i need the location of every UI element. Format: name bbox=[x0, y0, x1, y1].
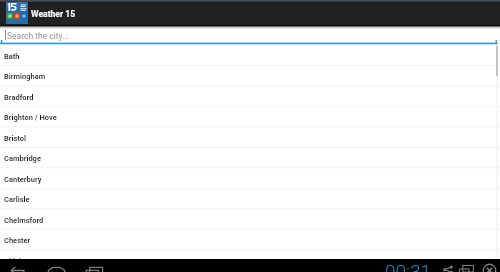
staticText: Bradford bbox=[4, 93, 34, 102]
staticText: Birmingham bbox=[4, 72, 46, 81]
button[interactable]: Cast screen bbox=[456, 259, 474, 272]
staticText: Brighton / Hove bbox=[4, 113, 57, 122]
staticText: Cambridge bbox=[4, 154, 41, 163]
staticText: 00:31 bbox=[385, 260, 432, 272]
button[interactable]: Search the city... bbox=[0, 26, 500, 43]
button[interactable]: Back bbox=[6, 259, 30, 272]
staticText: Search the city... bbox=[7, 31, 69, 41]
button[interactable]: Bristol bbox=[0, 127, 500, 148]
staticText: Chelmsford bbox=[4, 216, 44, 225]
button[interactable]: Chichester bbox=[0, 250, 500, 271]
button[interactable]: Bath bbox=[0, 45, 500, 66]
button[interactable]: Carlisle bbox=[0, 188, 500, 209]
staticText: Canterbury bbox=[4, 175, 42, 184]
staticText: Weather 15 bbox=[31, 9, 76, 19]
staticText: Bath bbox=[4, 52, 20, 61]
button[interactable]: Chelmsford bbox=[0, 209, 500, 230]
button[interactable]: Recent apps bbox=[83, 259, 107, 272]
staticText: Bristol bbox=[4, 134, 27, 143]
button[interactable]: Brighton / Hove bbox=[0, 106, 500, 127]
button[interactable]: Cambridge bbox=[0, 147, 500, 168]
staticText: Chichester bbox=[4, 257, 41, 266]
button[interactable]: Share bbox=[439, 259, 457, 272]
button[interactable]: Chester bbox=[0, 229, 500, 250]
button[interactable]: Home bbox=[44, 259, 68, 272]
button[interactable]: Birmingham bbox=[0, 65, 500, 86]
button[interactable]: Colchester bbox=[0, 270, 500, 272]
staticText: Chester bbox=[4, 236, 31, 245]
button[interactable]: Battery bbox=[480, 259, 498, 272]
button[interactable]: Bradford bbox=[0, 86, 500, 107]
staticText: Carlisle bbox=[4, 195, 30, 204]
button[interactable]: Canterbury bbox=[0, 168, 500, 189]
